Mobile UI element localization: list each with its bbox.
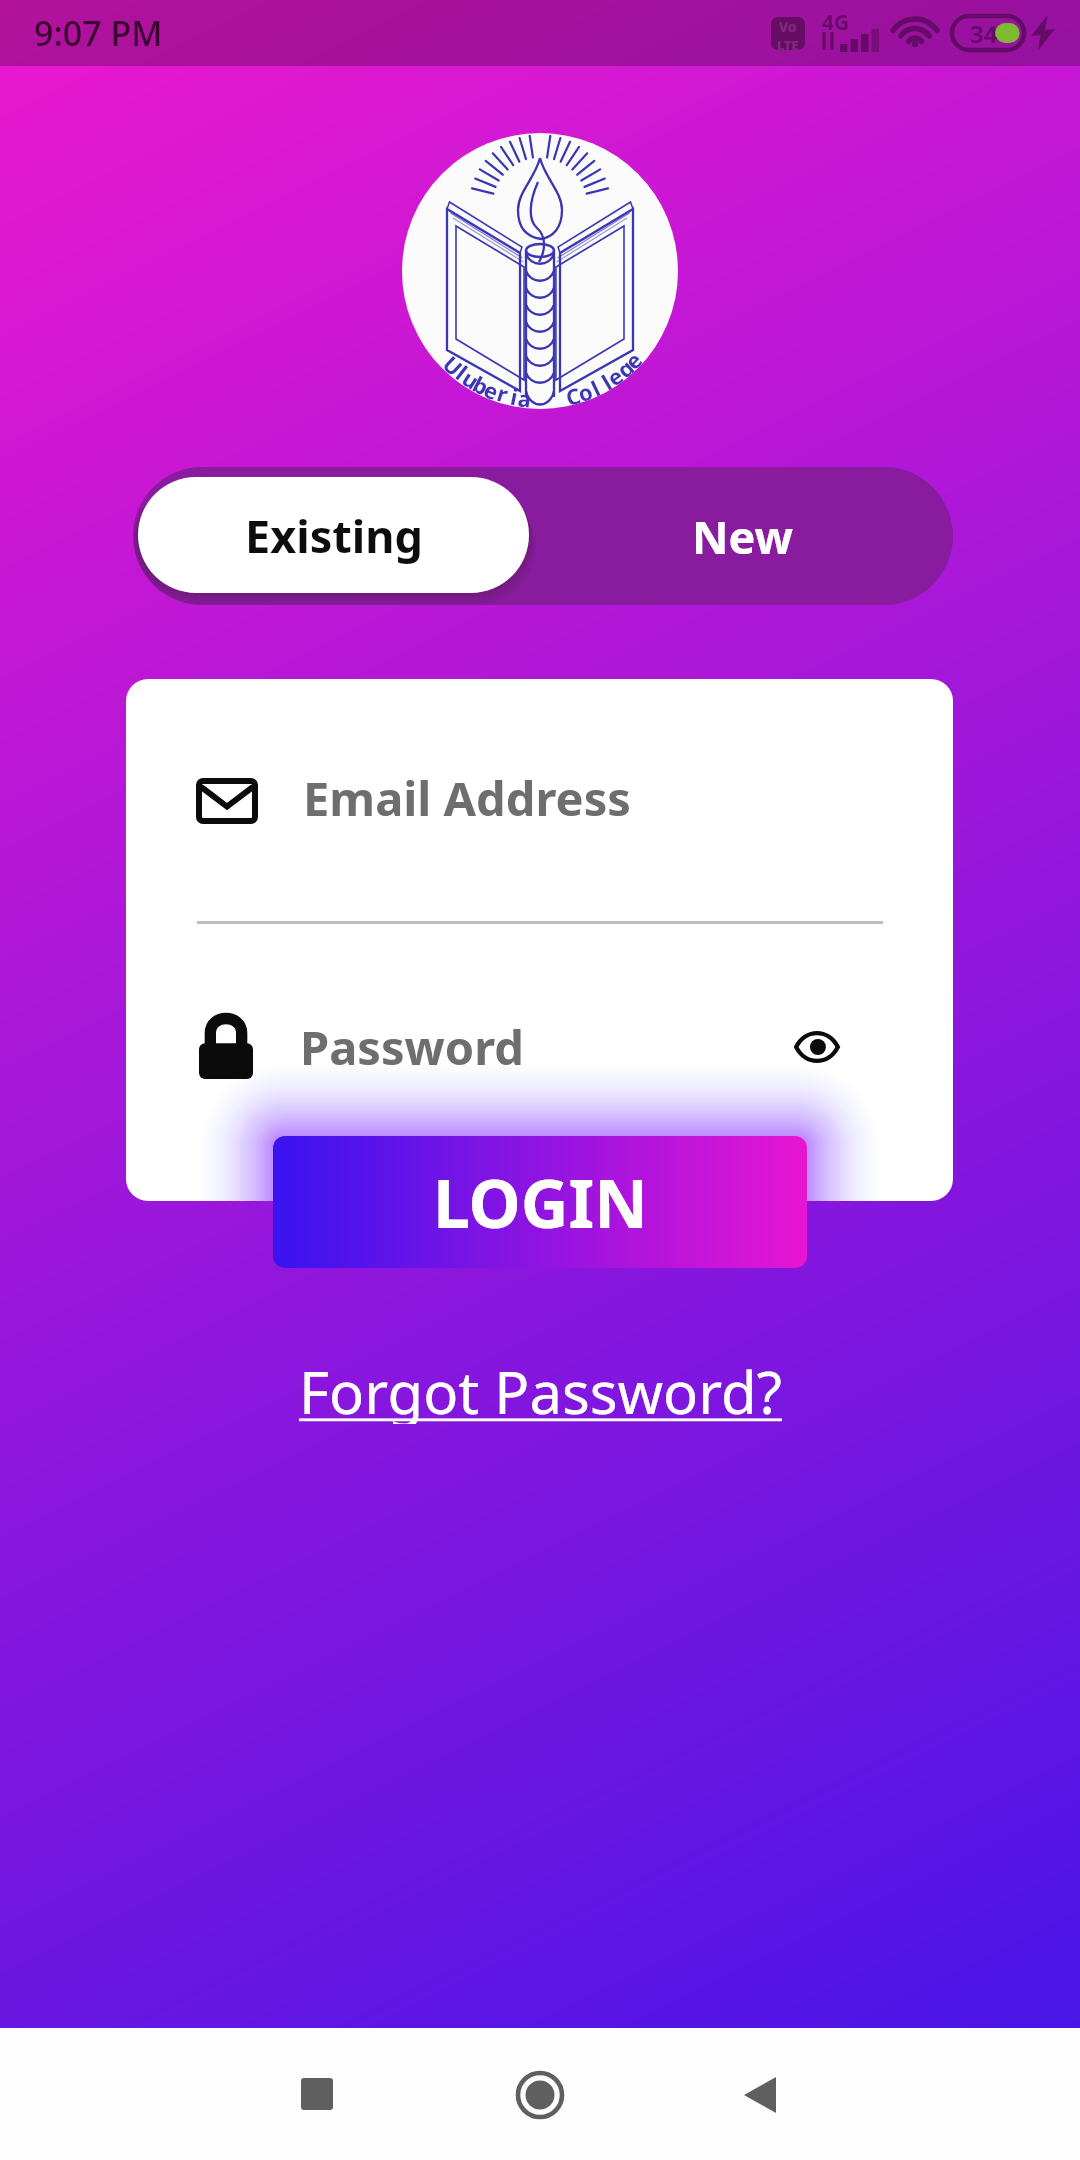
staticText: New — [692, 506, 794, 567]
staticText: e — [480, 373, 504, 407]
button[interactable]: Home — [450, 2029, 630, 2160]
staticText: 34 — [970, 17, 998, 50]
button[interactable]: Recent apps — [226, 2029, 406, 2160]
button[interactable]: Back — [670, 2029, 850, 2160]
staticText: 9:07 PM — [34, 10, 163, 56]
button[interactable]: New — [533, 467, 953, 605]
staticText: Existing — [245, 505, 423, 566]
staticText: l — [596, 367, 617, 396]
staticText: u — [457, 363, 486, 396]
staticText: o — [573, 375, 597, 408]
staticText: C — [562, 379, 585, 409]
staticText: LTE — [777, 36, 799, 50]
staticText: 4G — [822, 8, 850, 37]
staticText: Forgot Password? — [299, 1352, 782, 1424]
button[interactable]: Forgot Password? — [291, 1348, 790, 1428]
staticText: e — [617, 345, 649, 375]
staticText: l — [450, 358, 474, 386]
staticText: a — [516, 382, 534, 409]
button[interactable]: Show password — [771, 1012, 863, 1082]
staticText: r — [494, 377, 512, 409]
staticText: l — [586, 373, 605, 403]
staticText: b — [468, 368, 494, 402]
staticText: Password — [300, 1015, 524, 1079]
staticText: e — [600, 360, 629, 392]
staticText: g — [610, 352, 640, 384]
staticText: Email Address — [303, 766, 631, 830]
staticText: U — [437, 349, 470, 382]
button[interactable]: Existing — [138, 477, 529, 593]
button[interactable]: Password — [126, 987, 953, 1107]
button[interactable]: LOGIN — [273, 1136, 807, 1268]
staticText: LOGIN — [433, 1157, 648, 1247]
staticText: Vo — [779, 17, 797, 36]
staticText: i — [508, 381, 521, 409]
button[interactable]: Email Address — [126, 738, 953, 858]
